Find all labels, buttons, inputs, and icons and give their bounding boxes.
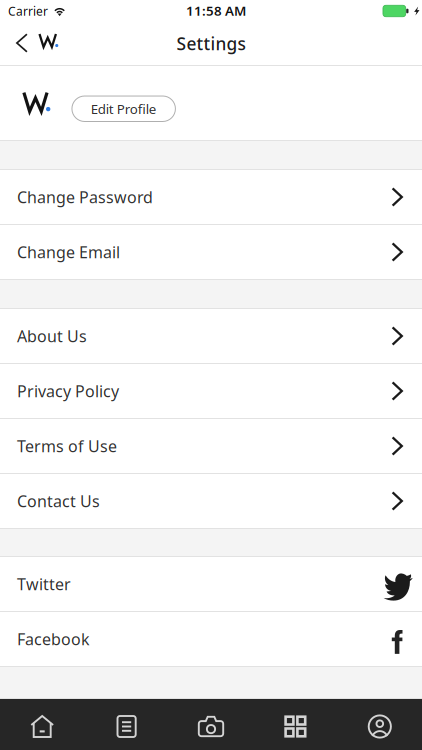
- staticText: About Us: [17, 325, 87, 347]
- staticText: Terms of Use: [17, 435, 117, 457]
- button[interactable]: Contact Us: [0, 474, 422, 528]
- staticText: Carrier: [8, 3, 48, 19]
- button[interactable]: Browse: [253, 699, 338, 750]
- button[interactable]: Terms of Use: [0, 419, 422, 473]
- button[interactable]: Edit Profile: [72, 96, 175, 121]
- staticText: Change Password: [17, 186, 153, 208]
- button[interactable]: Home: [0, 699, 84, 750]
- button[interactable]: Facebook: [0, 612, 422, 666]
- button[interactable]: About Us: [0, 309, 422, 363]
- button[interactable]: Change Email: [0, 225, 422, 279]
- staticText: Twitter: [17, 573, 71, 595]
- button[interactable]: Twitter: [0, 557, 422, 611]
- staticText: Contact Us: [17, 490, 100, 512]
- staticText: Privacy Policy: [17, 380, 119, 402]
- button[interactable]: Privacy Policy: [0, 364, 422, 418]
- button[interactable]: Profile: [338, 699, 422, 750]
- button[interactable]: Change Password: [0, 170, 422, 224]
- staticText: Edit Profile: [91, 100, 157, 118]
- button[interactable]: Feed: [84, 699, 169, 750]
- staticText: Facebook: [17, 628, 90, 650]
- button[interactable]: Back: [0, 22, 70, 65]
- staticText: 11:58 AM: [186, 2, 246, 19]
- staticText: Change Email: [17, 241, 120, 263]
- staticText: Settings: [176, 32, 245, 55]
- button[interactable]: Camera: [169, 699, 253, 750]
